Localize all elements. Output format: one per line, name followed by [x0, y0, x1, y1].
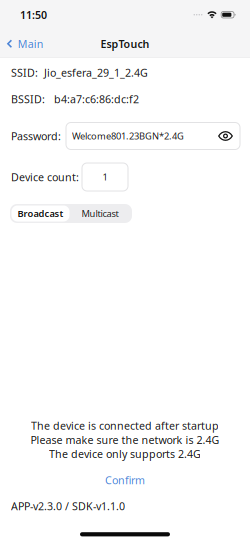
button[interactable]: Main: [0, 31, 52, 57]
staticText: SSID:: [11, 65, 38, 80]
button[interactable]: Show password: [218, 130, 233, 142]
staticText: Welcome801.23BGN*2.4G: [72, 130, 184, 142]
staticText: 1: [102, 171, 107, 183]
staticText: Broadcast: [17, 207, 63, 220]
staticText: Device count:: [11, 170, 79, 184]
staticText: 11:50: [20, 8, 47, 22]
staticText: b4:a7:c6:86:dc:f2: [54, 92, 139, 106]
button[interactable]: Multicast: [69, 205, 130, 221]
staticText: The device is connected after startup: [31, 418, 219, 433]
staticText: Confirm: [105, 473, 145, 487]
button[interactable]: Confirm: [0, 469, 250, 491]
staticText: The device only supports 2.4G: [49, 447, 201, 461]
staticText: BSSID:: [11, 92, 45, 106]
staticText: Please make sure the network is 2.4G: [30, 433, 219, 447]
staticText: Jio_esfera_29_1_2.4G: [44, 65, 148, 80]
button[interactable]: Broadcast: [11, 205, 69, 221]
staticText: Main: [18, 37, 44, 51]
staticText: Password:: [11, 129, 61, 143]
staticText: Multicast: [81, 207, 118, 220]
staticText: EspTouch: [100, 37, 149, 51]
staticText: APP-v2.3.0 / SDK-v1.1.0: [11, 499, 125, 513]
